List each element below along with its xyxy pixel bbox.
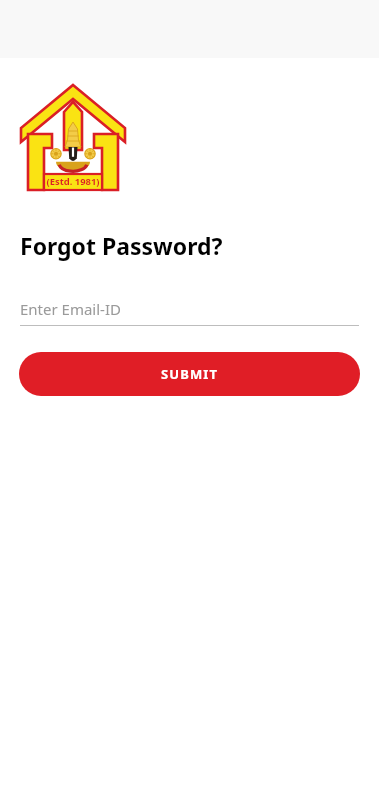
staticText: Forgot Password? <box>20 230 223 261</box>
staticText: Enter Email-ID <box>20 299 121 319</box>
staticText: (Estd. 1981) <box>18 175 128 188</box>
button[interactable]: SUBMIT <box>19 352 360 396</box>
staticText: SUBMIT <box>161 365 219 383</box>
button[interactable]: Enter Email-ID <box>20 299 359 326</box>
